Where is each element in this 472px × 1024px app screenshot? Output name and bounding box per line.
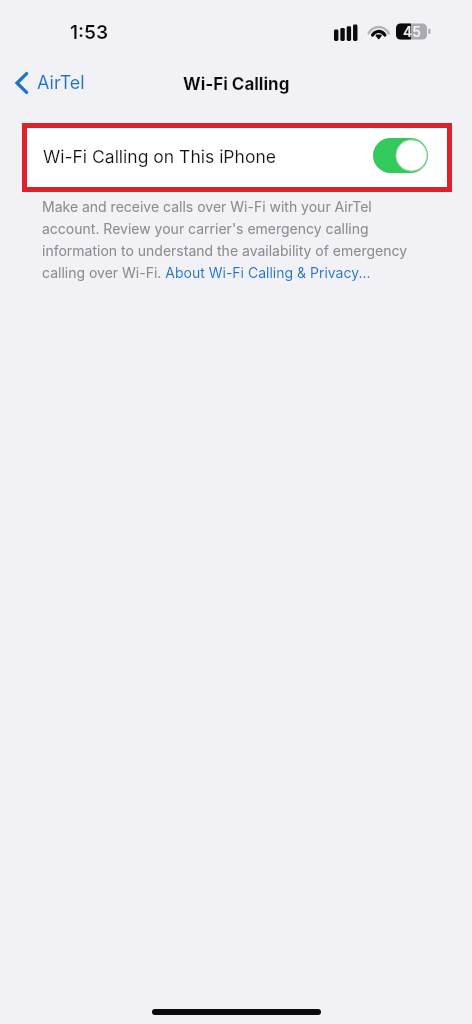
button[interactable]: About Wi-Fi Calling & Privacy... [167,260,373,282]
staticText: 1:53 [70,21,109,44]
staticText: Wi-Fi Calling [183,74,290,95]
button[interactable]: Wi-Fi Calling on This iPhone [22,123,452,192]
button[interactable]: Wi-Fi Calling on This iPhone toggle, on [373,138,428,173]
staticText: Make and receive calls over Wi-Fi with y… [42,194,414,282]
staticText: AirTel [37,72,85,94]
button[interactable]: AirTel [15,67,85,99]
staticText: About Wi-Fi Calling & Privacy... [167,260,373,282]
staticText: 45 [403,23,421,40]
staticText: Wi-Fi Calling on This iPhone [43,146,276,167]
